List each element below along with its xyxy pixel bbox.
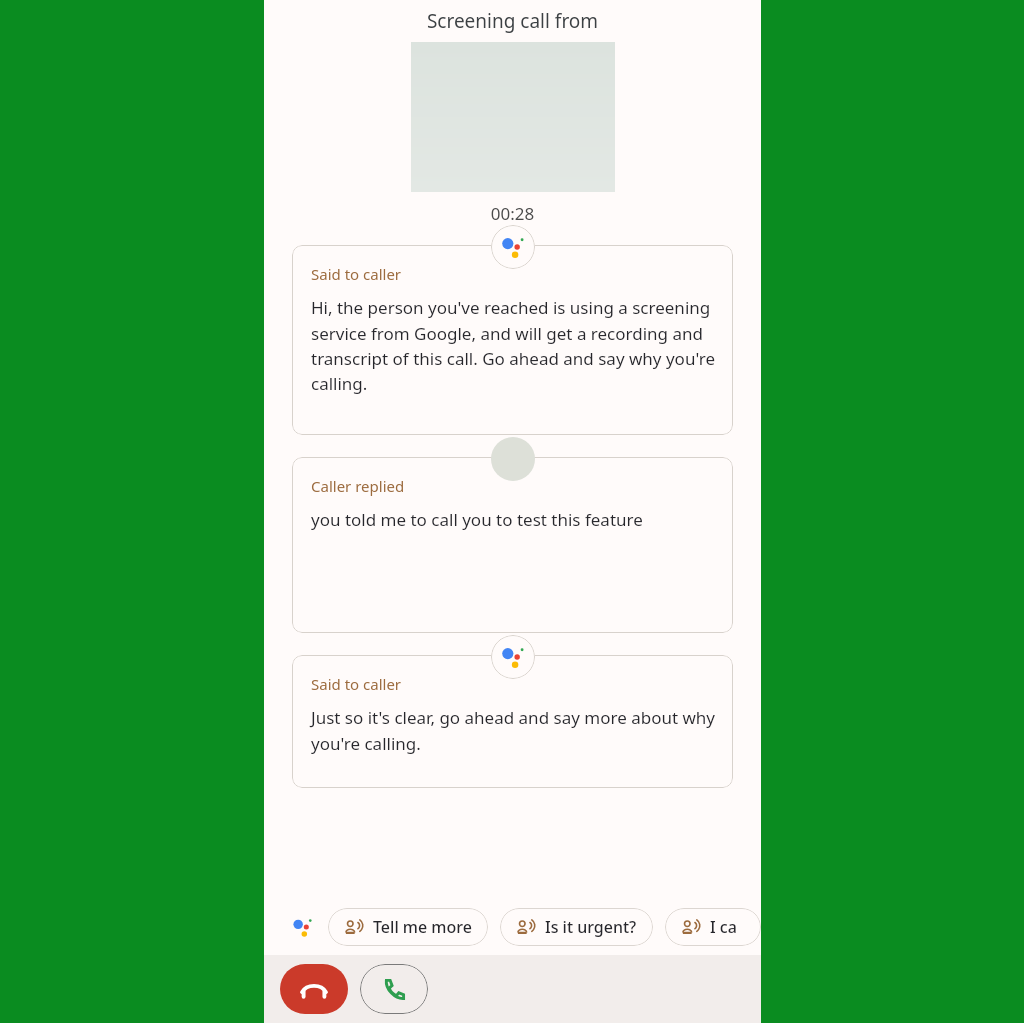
staticText: Said to caller (311, 674, 402, 694)
staticText: Hi, the person you've reached is using a… (311, 296, 717, 395)
staticText: Is it urgent? (545, 916, 637, 938)
button[interactable]: Is it urgent? (500, 908, 653, 946)
staticText: Tell me more (373, 916, 472, 938)
staticText: Said to caller (311, 264, 402, 284)
button[interactable]: Answer call (360, 964, 428, 1014)
staticText: 00:28 (264, 202, 761, 225)
button[interactable]: Hang up (280, 964, 348, 1014)
staticText: Caller replied (311, 476, 405, 496)
button[interactable]: I can't talk now (665, 908, 761, 946)
staticText: I can't talk now (710, 916, 745, 938)
button[interactable]: Caller replied (292, 457, 733, 633)
staticText: Just so it's clear, go ahead and say mor… (311, 706, 717, 755)
button[interactable]: Said to caller (292, 245, 733, 435)
staticText: you told me to call you to test this fea… (311, 508, 643, 531)
staticText: Screening call from (264, 8, 761, 34)
button[interactable]: Tell me more (328, 908, 488, 946)
button[interactable]: Said to caller (292, 655, 733, 788)
